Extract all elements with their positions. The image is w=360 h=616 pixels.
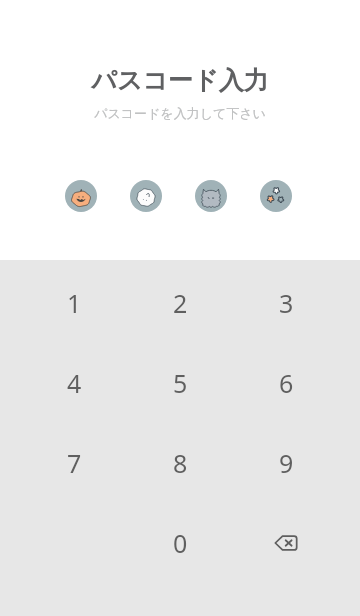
staticText: 3 [279, 286, 294, 320]
staticText: 8 [173, 446, 188, 480]
staticText: 1 [67, 286, 82, 320]
staticText: 4 [67, 366, 82, 400]
button[interactable]: 0 [127, 503, 233, 583]
button[interactable]: 4 [21, 343, 127, 423]
staticText: 6 [279, 366, 294, 400]
button[interactable]: 9 [233, 423, 339, 503]
button[interactable]: 7 [21, 423, 127, 503]
staticText: 9 [279, 446, 294, 480]
button[interactable]: Cat [195, 180, 227, 212]
button[interactable]: Pumpkin [65, 180, 97, 212]
staticText: 2 [173, 286, 188, 320]
button[interactable]: 6 [233, 343, 339, 423]
staticText: パスコード入力 [91, 65, 269, 96]
button[interactable]: 1 [21, 263, 127, 343]
staticText: 7 [67, 446, 82, 480]
button[interactable]: Ghost [130, 180, 162, 212]
button[interactable]: Backspace [233, 503, 339, 583]
staticText: パスコードを入力して下さい [94, 105, 266, 121]
button[interactable]: 3 [233, 263, 339, 343]
button[interactable]: 5 [127, 343, 233, 423]
button[interactable]: Sparkles [260, 180, 292, 212]
staticText: 0 [173, 526, 188, 560]
button[interactable]: 2 [127, 263, 233, 343]
staticText: 5 [173, 366, 188, 400]
button[interactable]: 8 [127, 423, 233, 503]
